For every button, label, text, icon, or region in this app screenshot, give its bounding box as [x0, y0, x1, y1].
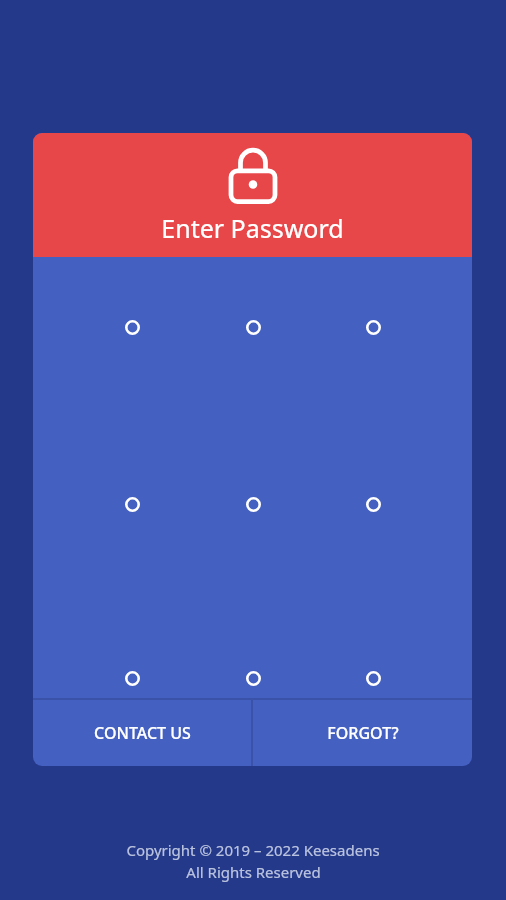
button[interactable]: Pattern dot: [110, 305, 154, 349]
button[interactable]: Pattern dot: [110, 659, 154, 698]
staticText: CONTACT US: [94, 722, 191, 744]
button[interactable]: FORGOT?: [253, 700, 472, 766]
button[interactable]: CONTACT US: [33, 700, 251, 766]
button[interactable]: Pattern dot: [351, 659, 395, 698]
button[interactable]: Pattern dot: [351, 482, 395, 526]
button[interactable]: Pattern dot: [351, 305, 395, 349]
staticText: Copyright © 2019 – 2022 Keesadens: [126, 840, 380, 860]
other: Lock: [228, 147, 278, 205]
staticText: Enter Password: [161, 211, 344, 245]
staticText: FORGOT?: [327, 722, 399, 744]
button[interactable]: Pattern dot: [231, 305, 275, 349]
button[interactable]: Pattern dot: [110, 482, 154, 526]
button[interactable]: Pattern dot: [231, 659, 275, 698]
button[interactable]: Pattern dot: [231, 482, 275, 526]
staticText: All Rights Reserved: [186, 862, 321, 882]
